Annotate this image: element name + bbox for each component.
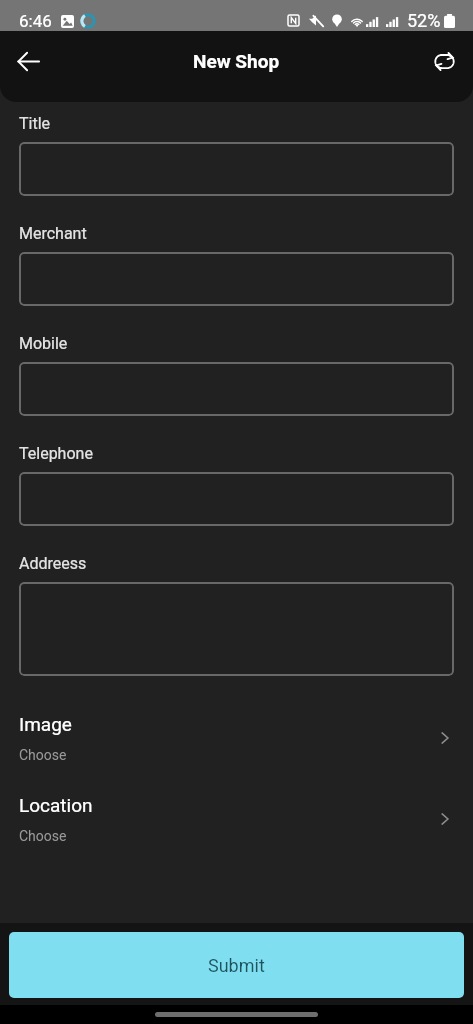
staticText: 6:46 xyxy=(19,11,52,31)
button[interactable] xyxy=(19,142,454,196)
button[interactable] xyxy=(19,472,454,526)
button[interactable]: Image xyxy=(19,713,454,763)
staticText: Choose xyxy=(19,828,67,844)
staticText: Mobile xyxy=(19,334,68,353)
staticText: Submit xyxy=(208,955,265,976)
button[interactable] xyxy=(19,582,454,676)
button[interactable]: Submit xyxy=(9,932,464,998)
staticText: Addreess xyxy=(19,554,87,573)
button[interactable]: Location xyxy=(19,794,454,844)
button[interactable]: Sync xyxy=(424,41,464,81)
button[interactable] xyxy=(19,362,454,416)
staticText: Choose xyxy=(19,747,67,763)
button[interactable] xyxy=(19,252,454,306)
staticText: Location xyxy=(19,794,93,816)
staticText: 52% xyxy=(407,10,441,31)
staticText: Telephone xyxy=(19,444,93,463)
staticText: Merchant xyxy=(19,224,87,243)
staticText: Image xyxy=(19,713,72,735)
button[interactable]: Back xyxy=(8,41,48,81)
staticText: Title xyxy=(19,114,51,133)
staticText: New Shop xyxy=(193,50,280,72)
